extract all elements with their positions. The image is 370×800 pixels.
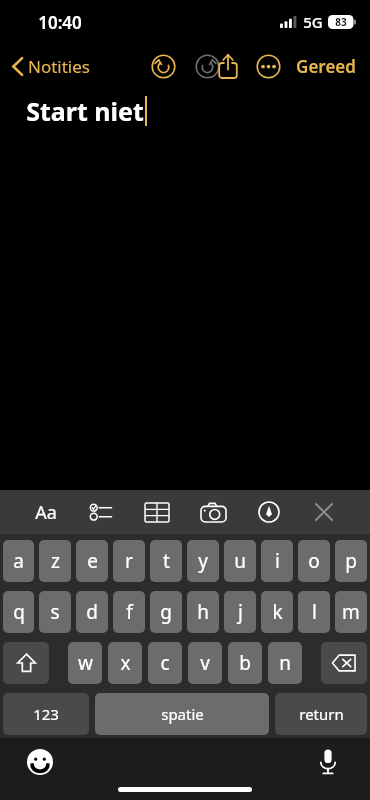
button[interactable]: w — [68, 642, 102, 684]
staticText: r — [125, 548, 133, 574]
button[interactable]: v — [188, 642, 222, 684]
staticText: o — [308, 548, 320, 574]
staticText: p — [345, 548, 357, 574]
button[interactable]: return — [275, 693, 367, 735]
button[interactable]: Checklist — [79, 492, 123, 532]
staticText: 83 — [335, 15, 347, 29]
staticText: c — [160, 650, 170, 676]
button[interactable]: Close keyboard — [302, 492, 346, 532]
button[interactable]: Gereed — [288, 49, 364, 84]
button[interactable]: e — [76, 540, 108, 582]
button[interactable]: Share — [208, 46, 248, 86]
staticText: v — [200, 650, 210, 676]
staticText: Aa — [35, 500, 57, 525]
button[interactable]: Text format — [24, 492, 68, 532]
staticText: Gereed — [296, 55, 356, 78]
staticText: spatie — [161, 704, 204, 724]
staticText: l — [312, 599, 317, 625]
staticText: 5G — [303, 12, 323, 32]
staticText: Notities — [28, 55, 90, 78]
staticText: Start niet — [26, 94, 144, 128]
staticText: return — [299, 704, 344, 724]
button[interactable]: Camera — [191, 492, 235, 532]
staticText: e — [87, 548, 98, 574]
staticText: x — [120, 650, 131, 676]
button[interactable]: h — [187, 591, 219, 633]
button[interactable]: Dictate — [310, 744, 346, 780]
button[interactable]: Redo — [188, 47, 226, 85]
button[interactable]: Emoji — [22, 744, 58, 780]
button[interactable]: p — [335, 540, 367, 582]
button[interactable]: i — [261, 540, 293, 582]
button[interactable]: Shift — [3, 642, 49, 684]
button[interactable]: b — [228, 642, 262, 684]
button[interactable]: c — [148, 642, 182, 684]
button[interactable]: z — [39, 540, 71, 582]
button[interactable]: Markup — [247, 492, 291, 532]
button[interactable]: y — [187, 540, 219, 582]
button[interactable]: m — [335, 591, 367, 633]
staticText: g — [160, 599, 172, 625]
button[interactable]: r — [113, 540, 145, 582]
button[interactable]: Notities — [8, 51, 94, 82]
button[interactable]: 123 — [3, 693, 89, 735]
button[interactable]: Undo — [144, 47, 182, 85]
button[interactable]: f — [113, 591, 145, 633]
button[interactable]: a — [3, 540, 34, 582]
button[interactable]: g — [150, 591, 182, 633]
staticText: j — [238, 599, 243, 625]
button[interactable]: k — [261, 591, 293, 633]
staticText: 10:40 — [38, 11, 82, 34]
button[interactable]: d — [76, 591, 108, 633]
button[interactable]: n — [268, 642, 302, 684]
button[interactable]: More options — [248, 46, 288, 86]
staticText: h — [197, 599, 209, 625]
button[interactable]: Backspace — [321, 642, 367, 684]
button[interactable]: j — [224, 591, 256, 633]
staticText: t — [163, 548, 170, 574]
staticText: d — [86, 599, 98, 625]
staticText: w — [78, 650, 93, 676]
button[interactable]: Table — [135, 492, 179, 532]
staticText: f — [126, 599, 133, 625]
button[interactable]: spatie — [95, 693, 269, 735]
staticText: a — [13, 548, 24, 574]
button[interactable]: x — [108, 642, 142, 684]
staticText: m — [342, 599, 360, 625]
staticText: z — [51, 548, 60, 574]
staticText: b — [239, 650, 251, 676]
button[interactable]: q — [3, 591, 34, 633]
button[interactable]: o — [298, 540, 330, 582]
button[interactable]: t — [150, 540, 182, 582]
staticText: u — [234, 548, 246, 574]
staticText: i — [275, 548, 280, 574]
button[interactable]: l — [298, 591, 330, 633]
button[interactable]: u — [224, 540, 256, 582]
staticText: q — [13, 599, 25, 625]
staticText: y — [198, 548, 208, 574]
button[interactable]: s — [39, 591, 71, 633]
staticText: n — [279, 650, 291, 676]
staticText: s — [50, 599, 60, 625]
staticText: k — [272, 599, 283, 625]
staticText: 123 — [33, 704, 59, 724]
